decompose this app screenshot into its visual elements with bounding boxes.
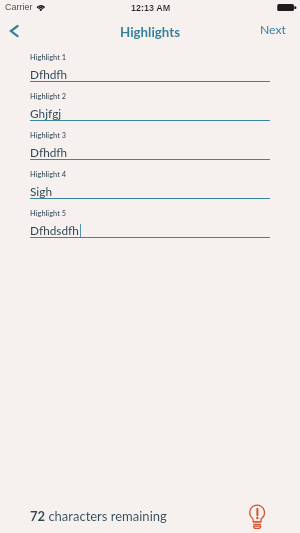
staticText: Carrier bbox=[5, 2, 33, 12]
staticText: Dfhdfh bbox=[30, 145, 68, 159]
staticText: Highlights bbox=[0, 24, 300, 40]
staticText: Ghjfgj bbox=[30, 106, 62, 120]
button[interactable]: Highlight 4 bbox=[30, 170, 270, 200]
staticText: Highlight 1 bbox=[30, 53, 67, 62]
staticText: Highlight 3 bbox=[30, 131, 67, 140]
button[interactable]: Highlight 1 bbox=[30, 53, 270, 83]
button[interactable]: Highlight 3 bbox=[30, 131, 270, 161]
button[interactable]: Next bbox=[254, 17, 292, 41]
staticText: Highlight 4 bbox=[30, 170, 67, 179]
staticText: Dfhdfh bbox=[30, 67, 68, 81]
staticText: Next bbox=[260, 22, 286, 37]
button[interactable]: Highlight 5 bbox=[30, 209, 270, 239]
staticText: Highlight 5 bbox=[30, 209, 67, 218]
staticText: Sigh bbox=[30, 184, 53, 198]
staticText: 12:13 AM bbox=[131, 3, 171, 13]
staticText: Highlight 2 bbox=[30, 92, 67, 101]
button[interactable]: Tip bbox=[246, 498, 271, 532]
staticText: Dfhdsdfh bbox=[30, 223, 79, 237]
button[interactable]: Highlight 2 bbox=[30, 92, 270, 122]
staticText: 72 characters remaining bbox=[30, 508, 167, 524]
button[interactable]: Back bbox=[2, 17, 26, 45]
